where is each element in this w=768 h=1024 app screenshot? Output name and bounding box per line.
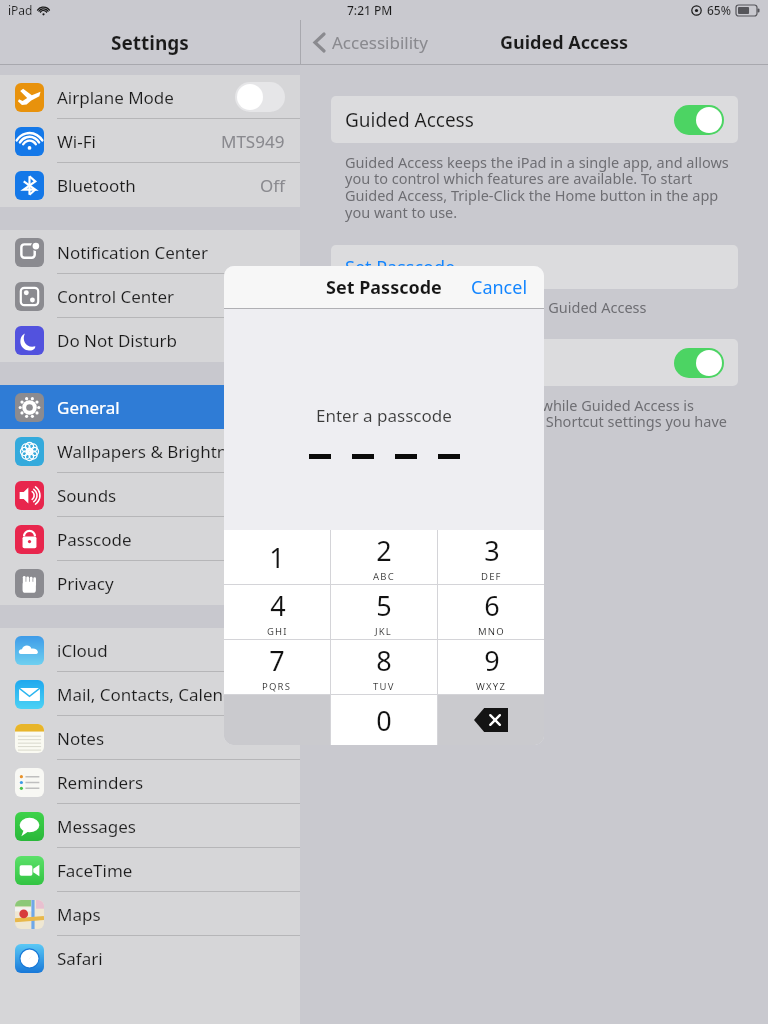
button[interactable]: Maps — [0, 892, 300, 936]
staticText: 65% — [707, 2, 731, 18]
staticText: Cancel — [471, 275, 528, 300]
staticText: Sounds — [57, 484, 117, 507]
staticText: 4 — [270, 587, 286, 624]
staticText: Reminders — [57, 771, 144, 794]
staticText: iCloud — [57, 639, 108, 662]
button[interactable]: Accessibility Shortcut — [331, 339, 738, 386]
button[interactable]: Control Center — [0, 274, 300, 318]
staticText: Safari — [57, 947, 103, 970]
staticText: General — [57, 396, 120, 419]
staticText: Do Not Disturb — [57, 329, 177, 352]
button[interactable]: Notification Center — [0, 230, 300, 274]
button[interactable] — [235, 82, 285, 112]
staticText: JKL — [375, 625, 393, 638]
staticText: WXYZ — [476, 680, 507, 693]
staticText: Control Center — [57, 285, 175, 308]
button[interactable]: FaceTime — [0, 848, 300, 892]
staticText: Guided Access keeps the iPad in a single… — [345, 152, 734, 223]
button[interactable]: Cancel — [455, 267, 544, 308]
staticText: 7:21 PM — [347, 2, 393, 18]
staticText: PQRS — [262, 680, 292, 693]
staticText: 9 — [484, 642, 500, 679]
button[interactable]: Sounds — [0, 473, 300, 517]
staticText: Maps — [57, 903, 101, 926]
staticText: ABC — [373, 570, 395, 583]
staticText: Messages — [57, 815, 137, 838]
button[interactable]: 2 — [331, 530, 437, 584]
button[interactable]: Privacy — [0, 561, 300, 605]
button[interactable]: Do Not Disturb — [0, 318, 300, 362]
button[interactable]: Guided Access — [331, 96, 738, 143]
staticText: Set the passcode used to end Guided Acce… — [345, 297, 647, 317]
staticText: 5 — [376, 587, 392, 624]
button[interactable]: 9 — [438, 640, 544, 694]
staticText: Bluetooth — [57, 174, 136, 197]
button[interactable] — [674, 348, 724, 378]
staticText: 1 — [269, 539, 285, 576]
button[interactable]: Notes — [0, 716, 300, 760]
button[interactable]: General — [0, 385, 300, 429]
button[interactable]: Passcode — [0, 517, 300, 561]
staticText: Accessibility — [332, 31, 428, 54]
staticText: iPad — [8, 2, 33, 18]
button[interactable]: 6 — [438, 585, 544, 639]
button[interactable]: iCloud — [0, 628, 300, 672]
staticText: Guided Access — [500, 30, 629, 55]
staticText: Set Passcode — [326, 275, 442, 300]
button[interactable]: Messages — [0, 804, 300, 848]
staticText: 8 — [376, 642, 392, 679]
button[interactable]: 3 — [438, 530, 544, 584]
staticText: FaceTime — [57, 859, 133, 882]
button[interactable]: Wi-Fi — [0, 119, 300, 163]
staticText: MTS949 — [221, 130, 285, 153]
staticText: Wi-Fi — [57, 130, 96, 153]
button[interactable]: 8 — [331, 640, 437, 694]
staticText: Triple-click the Home button while Guide… — [345, 395, 734, 449]
staticText: MNO — [478, 625, 505, 638]
button[interactable]: Bluetooth — [0, 163, 300, 207]
button[interactable]: Airplane Mode — [0, 75, 300, 119]
button[interactable]: 7 — [224, 640, 330, 694]
button[interactable]: Safari — [0, 936, 300, 980]
staticText: Privacy — [57, 572, 114, 595]
button[interactable] — [674, 105, 724, 135]
staticText: Airplane Mode — [57, 86, 174, 109]
staticText: Settings — [111, 30, 189, 56]
staticText: Passcode — [57, 528, 132, 551]
staticText: 7 — [269, 642, 285, 679]
button[interactable]: Set Passcode — [331, 245, 738, 289]
staticText: Notification Center — [57, 241, 208, 264]
staticText: Mail, Contacts, Calendars — [57, 683, 259, 706]
staticText: Set Passcode — [345, 255, 456, 280]
staticText: Enter a passcode — [316, 404, 452, 427]
staticText: Off — [260, 174, 285, 197]
button[interactable]: Reminders — [0, 760, 300, 804]
button[interactable]: Delete — [438, 695, 544, 745]
staticText: 0 — [376, 702, 392, 739]
staticText: Guided Access — [345, 107, 474, 133]
button[interactable]: 1 — [224, 530, 330, 584]
staticText: GHI — [267, 625, 288, 638]
button[interactable]: Mail, Contacts, Calendars — [0, 672, 300, 716]
staticText: TUV — [373, 680, 395, 693]
button[interactable]: Accessibility — [309, 27, 432, 58]
staticText: DEF — [481, 570, 502, 583]
staticText: Wallpapers & Brightness — [57, 440, 254, 463]
button[interactable]: 0 — [331, 695, 437, 745]
staticText: 3 — [484, 532, 500, 569]
button[interactable]: 5 — [331, 585, 437, 639]
staticText: 2 — [376, 532, 392, 569]
button[interactable]: 4 — [224, 585, 330, 639]
staticText: Notes — [57, 727, 105, 750]
staticText: 6 — [484, 587, 500, 624]
button[interactable]: Wallpapers & Brightness — [0, 429, 300, 473]
